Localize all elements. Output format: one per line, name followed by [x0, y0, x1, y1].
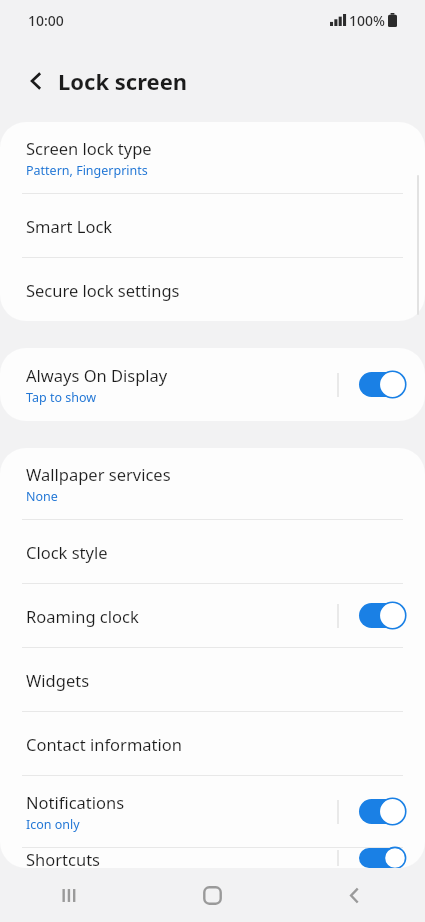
staticText: Notifications: [26, 791, 125, 813]
staticText: 100%: [349, 11, 385, 30]
button[interactable]: Shortcuts: [0, 848, 425, 868]
button[interactable]: Contact information: [0, 712, 425, 776]
staticText: Screen lock type: [26, 137, 152, 159]
button[interactable]: Roaming clock toggle: [359, 603, 405, 628]
staticText: Always On Display: [26, 364, 168, 386]
staticText: Tap to show: [26, 389, 97, 406]
button[interactable]: Always On Display: [0, 348, 425, 421]
button[interactable]: Smart Lock: [0, 194, 425, 258]
button[interactable]: Always On Display toggle: [359, 372, 405, 397]
button[interactable]: Back: [283, 868, 425, 922]
button[interactable]: Home: [141, 868, 283, 922]
staticText: Lock screen: [58, 66, 188, 96]
staticText: Widgets: [26, 669, 90, 691]
staticText: Secure lock settings: [26, 279, 180, 301]
staticText: Clock style: [26, 541, 108, 563]
button[interactable]: Notifications toggle: [359, 799, 405, 824]
button[interactable]: Secure lock settings: [0, 258, 425, 321]
staticText: Wallpaper services: [26, 463, 171, 485]
staticText: Contact information: [26, 733, 182, 755]
button[interactable]: Widgets: [0, 648, 425, 712]
staticText: Roaming clock: [26, 605, 139, 627]
button[interactable]: Clock style: [0, 520, 425, 584]
button[interactable]: Screen lock type: [0, 122, 425, 194]
staticText: Smart Lock: [26, 215, 113, 237]
button[interactable]: Roaming clock: [0, 584, 425, 648]
staticText: 10:00: [28, 11, 64, 30]
button[interactable]: Shortcuts toggle: [359, 848, 405, 868]
staticText: None: [26, 488, 58, 505]
button[interactable]: Wallpaper services: [0, 448, 425, 520]
button[interactable]: Back: [14, 59, 58, 103]
staticText: Pattern, Fingerprints: [26, 162, 148, 179]
button[interactable]: Recents: [0, 868, 141, 922]
staticText: Shortcuts: [26, 848, 100, 868]
button[interactable]: Notifications: [0, 776, 425, 848]
staticText: Icon only: [26, 816, 80, 833]
